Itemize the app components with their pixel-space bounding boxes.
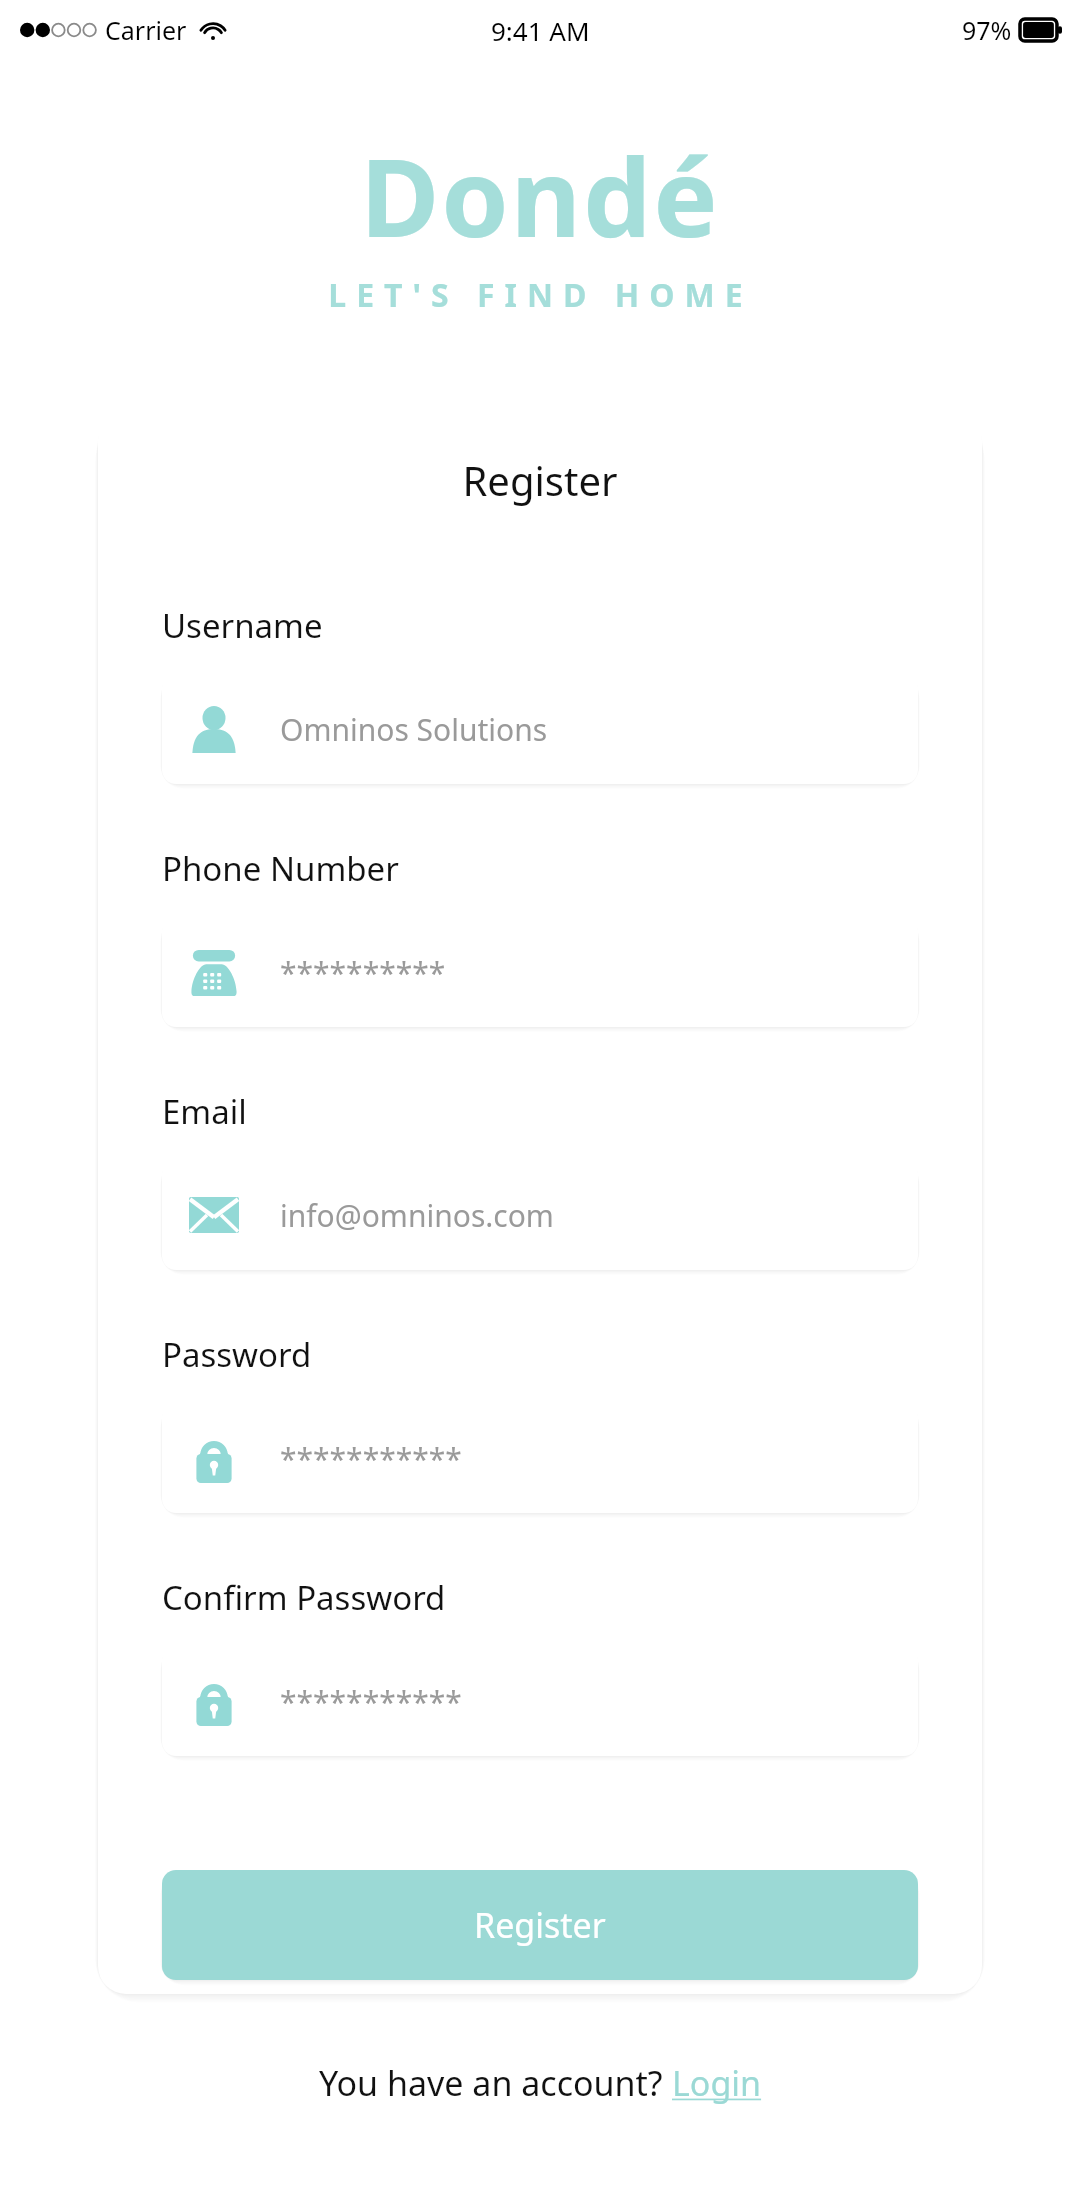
staticText: **********	[280, 952, 446, 993]
button[interactable]: Username	[162, 674, 918, 784]
staticText: 9:41 AM	[491, 13, 590, 48]
staticText: Password	[162, 1332, 312, 1377]
staticText: Email	[162, 1089, 247, 1134]
staticText: ***********	[280, 1681, 462, 1722]
staticText: Login	[672, 2060, 762, 2106]
button[interactable]: Phone Number	[162, 917, 918, 1027]
staticText: Register	[162, 453, 918, 507]
button[interactable]: Register	[162, 1870, 918, 1980]
button[interactable]: Confirm Password	[162, 1646, 918, 1756]
staticText: Username	[162, 603, 323, 648]
staticText: Phone Number	[162, 846, 399, 891]
staticText: Omninos Solutions	[280, 709, 548, 750]
staticText: info@omninos.com	[280, 1195, 554, 1236]
staticText: 97%	[962, 13, 1012, 47]
staticText: ***********	[280, 1438, 462, 1479]
button[interactable]: Email	[162, 1160, 918, 1270]
button[interactable]: Password	[162, 1403, 918, 1513]
button[interactable]: Login	[672, 2060, 762, 2106]
staticText: LET'S FIND HOME	[328, 273, 753, 317]
staticText: Confirm Password	[162, 1575, 446, 1620]
staticText: Register	[474, 1902, 606, 1948]
staticText: Carrier	[105, 13, 187, 47]
staticText: You have an account?	[319, 2060, 672, 2106]
staticText: Dondé	[360, 122, 720, 269]
